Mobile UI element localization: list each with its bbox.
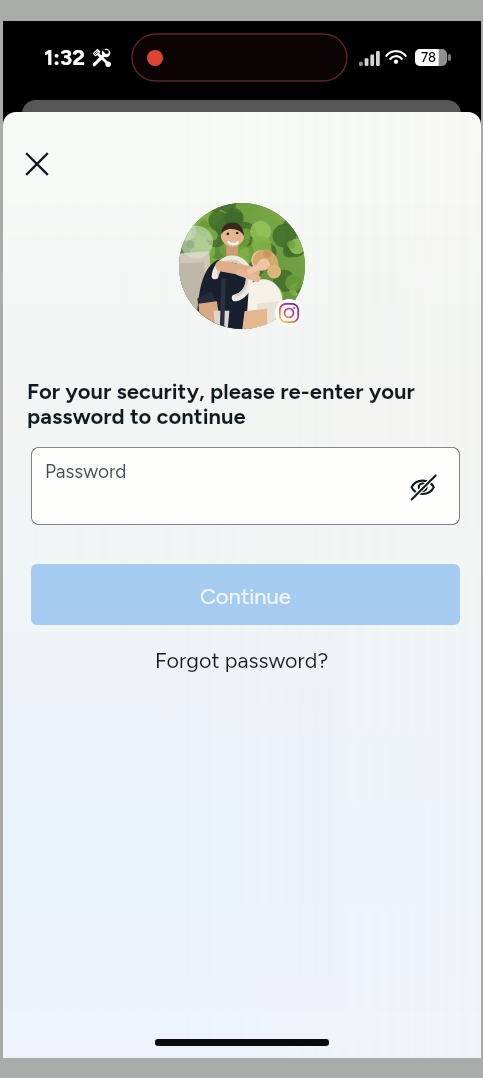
staticText: 1:32 bbox=[44, 44, 85, 70]
staticText: Continue bbox=[200, 583, 291, 609]
button[interactable]: Close bbox=[16, 143, 58, 185]
button[interactable]: Show password bbox=[401, 464, 445, 508]
button[interactable]: Continue bbox=[31, 564, 460, 625]
button[interactable]: Password bbox=[31, 447, 460, 525]
staticText: 78 bbox=[421, 50, 437, 66]
staticText: For your security, please re-enter your … bbox=[27, 378, 457, 429]
staticText: Password bbox=[45, 460, 127, 483]
button[interactable]: Forgot password? bbox=[143, 641, 346, 681]
staticText: Forgot password? bbox=[155, 648, 329, 674]
